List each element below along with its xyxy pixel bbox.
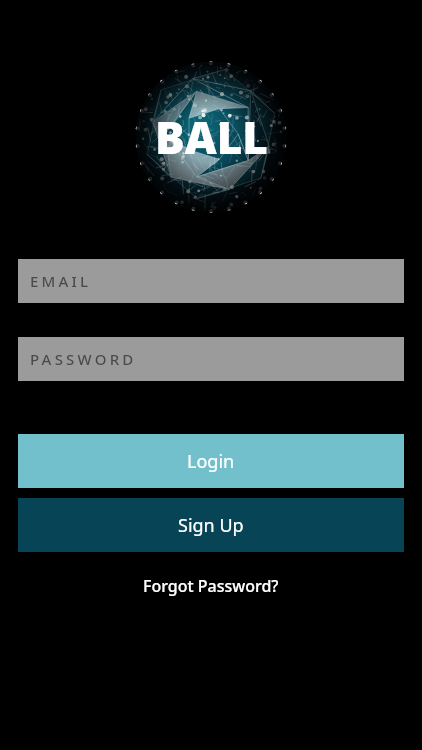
staticText: EMAIL <box>30 271 92 291</box>
staticText: Forgot Password? <box>143 575 279 597</box>
button[interactable]: Sign Up <box>18 498 404 552</box>
staticText: PASSWORD <box>30 349 137 369</box>
button[interactable]: Forgot Password? <box>127 570 295 602</box>
button[interactable]: EMAIL <box>18 259 404 303</box>
staticText: Login <box>187 449 235 474</box>
button[interactable]: Login <box>18 434 404 488</box>
button[interactable]: PASSWORD <box>18 337 404 381</box>
staticText: BALL <box>155 107 268 167</box>
staticText: Sign Up <box>178 513 244 538</box>
